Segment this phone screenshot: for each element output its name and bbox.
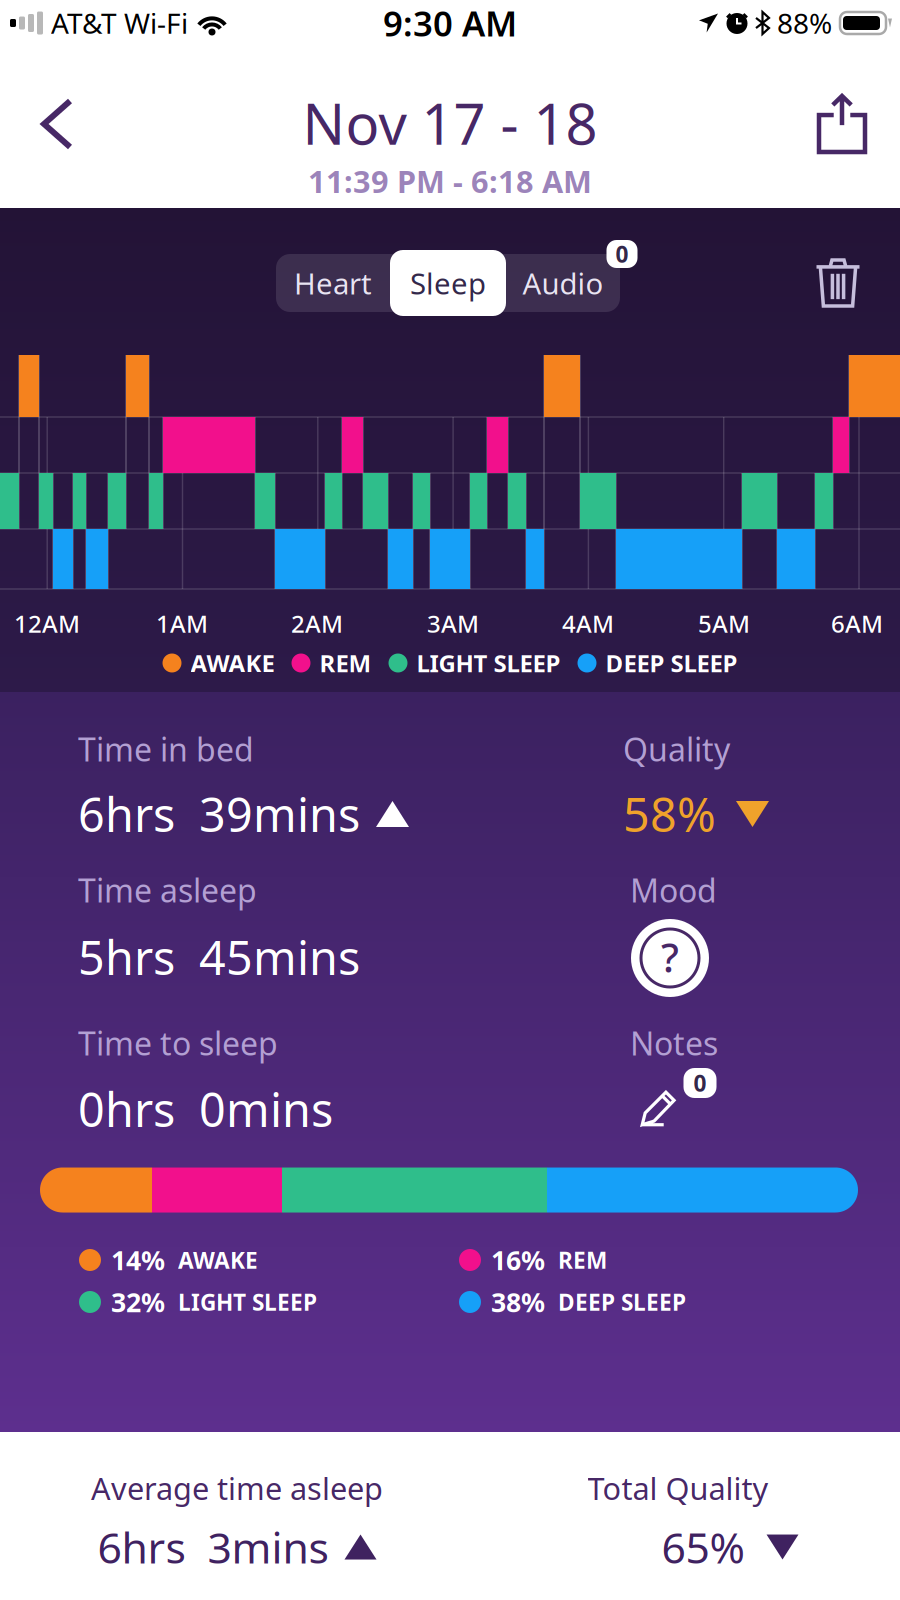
staticText: 88% [777, 4, 832, 42]
button[interactable]: Back [26, 93, 88, 155]
staticText: ? [661, 930, 679, 983]
button[interactable]: Audio [507, 254, 619, 312]
staticText: AWAKE [178, 1245, 258, 1275]
staticText: DEEP SLEEP [605, 647, 737, 679]
staticText: Time in bed [78, 728, 254, 770]
staticText: 0hrs 0mins [78, 1078, 333, 1140]
staticText: LIGHT SLEEP [178, 1287, 317, 1317]
staticText: 16% [491, 1242, 545, 1278]
staticText: 6hrs 3mins [97, 1519, 328, 1575]
staticText: Mood [630, 869, 717, 911]
staticText: 58% [623, 783, 716, 845]
staticText: Heart [294, 263, 372, 302]
staticText: AT&T Wi-Fi [51, 4, 188, 42]
staticText: 2AM [291, 608, 343, 639]
button[interactable]: Sleep [390, 250, 506, 316]
staticText: 9:30 AM [383, 0, 517, 46]
staticText: Sleep [410, 263, 486, 302]
button[interactable]: Add note [618, 1075, 718, 1137]
staticText: 32% [111, 1284, 165, 1320]
staticText: 5AM [698, 608, 750, 639]
button[interactable]: Share [809, 86, 875, 162]
staticText: 3AM [427, 608, 479, 639]
staticText: 12AM [14, 608, 80, 639]
staticText: REM [558, 1245, 607, 1275]
staticText: 1AM [156, 608, 208, 639]
staticText: LIGHT SLEEP [416, 647, 560, 679]
staticText: 5hrs 45mins [78, 926, 360, 988]
staticText: Quality [623, 728, 730, 770]
staticText: Total Quality [587, 1468, 768, 1508]
staticText: REM [319, 647, 371, 679]
staticText: Time to sleep [78, 1022, 278, 1064]
staticText: Nov 17 - 18 [302, 86, 597, 160]
staticText: 0 [615, 239, 628, 269]
button[interactable]: Delete [806, 250, 869, 316]
staticText: 14% [111, 1242, 165, 1278]
staticText: DEEP SLEEP [558, 1287, 686, 1317]
button[interactable]: Heart [277, 254, 389, 312]
staticText: Notes [630, 1022, 718, 1064]
staticText: 6hrs 39mins [78, 783, 360, 845]
staticText: 38% [491, 1284, 545, 1320]
staticText: Time asleep [78, 869, 257, 911]
staticText: 11:39 PM - 6:18 AM [308, 161, 592, 201]
staticText: Audio [522, 263, 603, 302]
button[interactable]: Set mood [631, 919, 709, 997]
staticText: AWAKE [190, 647, 274, 679]
staticText: 0 [693, 1068, 706, 1098]
staticText: 4AM [562, 608, 614, 639]
staticText: 6AM [831, 608, 883, 639]
staticText: Average time asleep [91, 1468, 383, 1508]
staticText: 65% [661, 1519, 744, 1575]
